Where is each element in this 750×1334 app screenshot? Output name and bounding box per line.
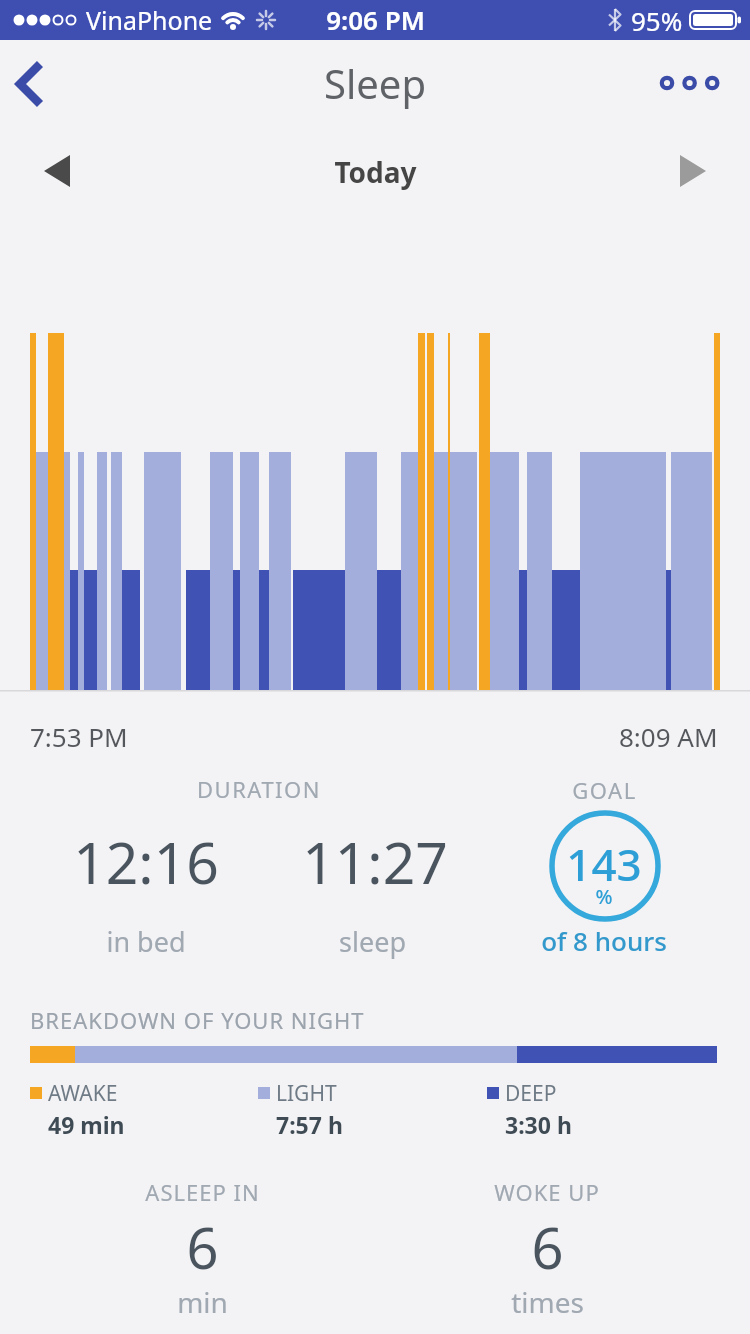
button[interactable] — [30, 145, 84, 199]
button[interactable] — [540, 800, 670, 930]
staticText: 3:30 h — [505, 1109, 572, 1140]
staticText: 8:09 AM — [619, 719, 718, 754]
staticText: LIGHT — [276, 1079, 337, 1108]
staticText: times — [511, 1283, 584, 1321]
staticText: ASLEEP IN — [145, 1177, 260, 1207]
staticText: 6 — [186, 1209, 219, 1285]
staticText: sleep — [339, 923, 406, 960]
staticText: VinaPhone — [86, 3, 213, 37]
staticText: GOAL — [572, 775, 637, 805]
button[interactable] — [666, 145, 720, 199]
staticText: DEEP — [505, 1079, 557, 1108]
staticText: 49 min — [48, 1109, 125, 1140]
staticText: min — [177, 1283, 228, 1321]
staticText: 143 — [566, 834, 642, 894]
staticText: 95% — [631, 3, 683, 38]
staticText: WOKE UP — [494, 1177, 600, 1207]
button[interactable] — [8, 54, 64, 114]
staticText: DURATION — [197, 774, 321, 804]
button[interactable] — [650, 55, 730, 111]
staticText: 11:27 — [302, 823, 448, 901]
staticText: 9:06 PM — [326, 2, 425, 37]
staticText: of 8 hours — [541, 923, 667, 958]
staticText: 6 — [531, 1209, 564, 1285]
staticText: BREAKDOWN OF YOUR NIGHT — [30, 1005, 365, 1035]
staticText: 7:53 PM — [30, 719, 128, 754]
staticText: Today — [334, 153, 417, 191]
staticText: 7:57 h — [276, 1109, 343, 1140]
staticText: Sleep — [324, 56, 426, 110]
staticText: in bed — [106, 923, 186, 960]
staticText: 12:16 — [73, 823, 219, 901]
staticText: % — [595, 883, 613, 910]
staticText: AWAKE — [48, 1079, 118, 1108]
